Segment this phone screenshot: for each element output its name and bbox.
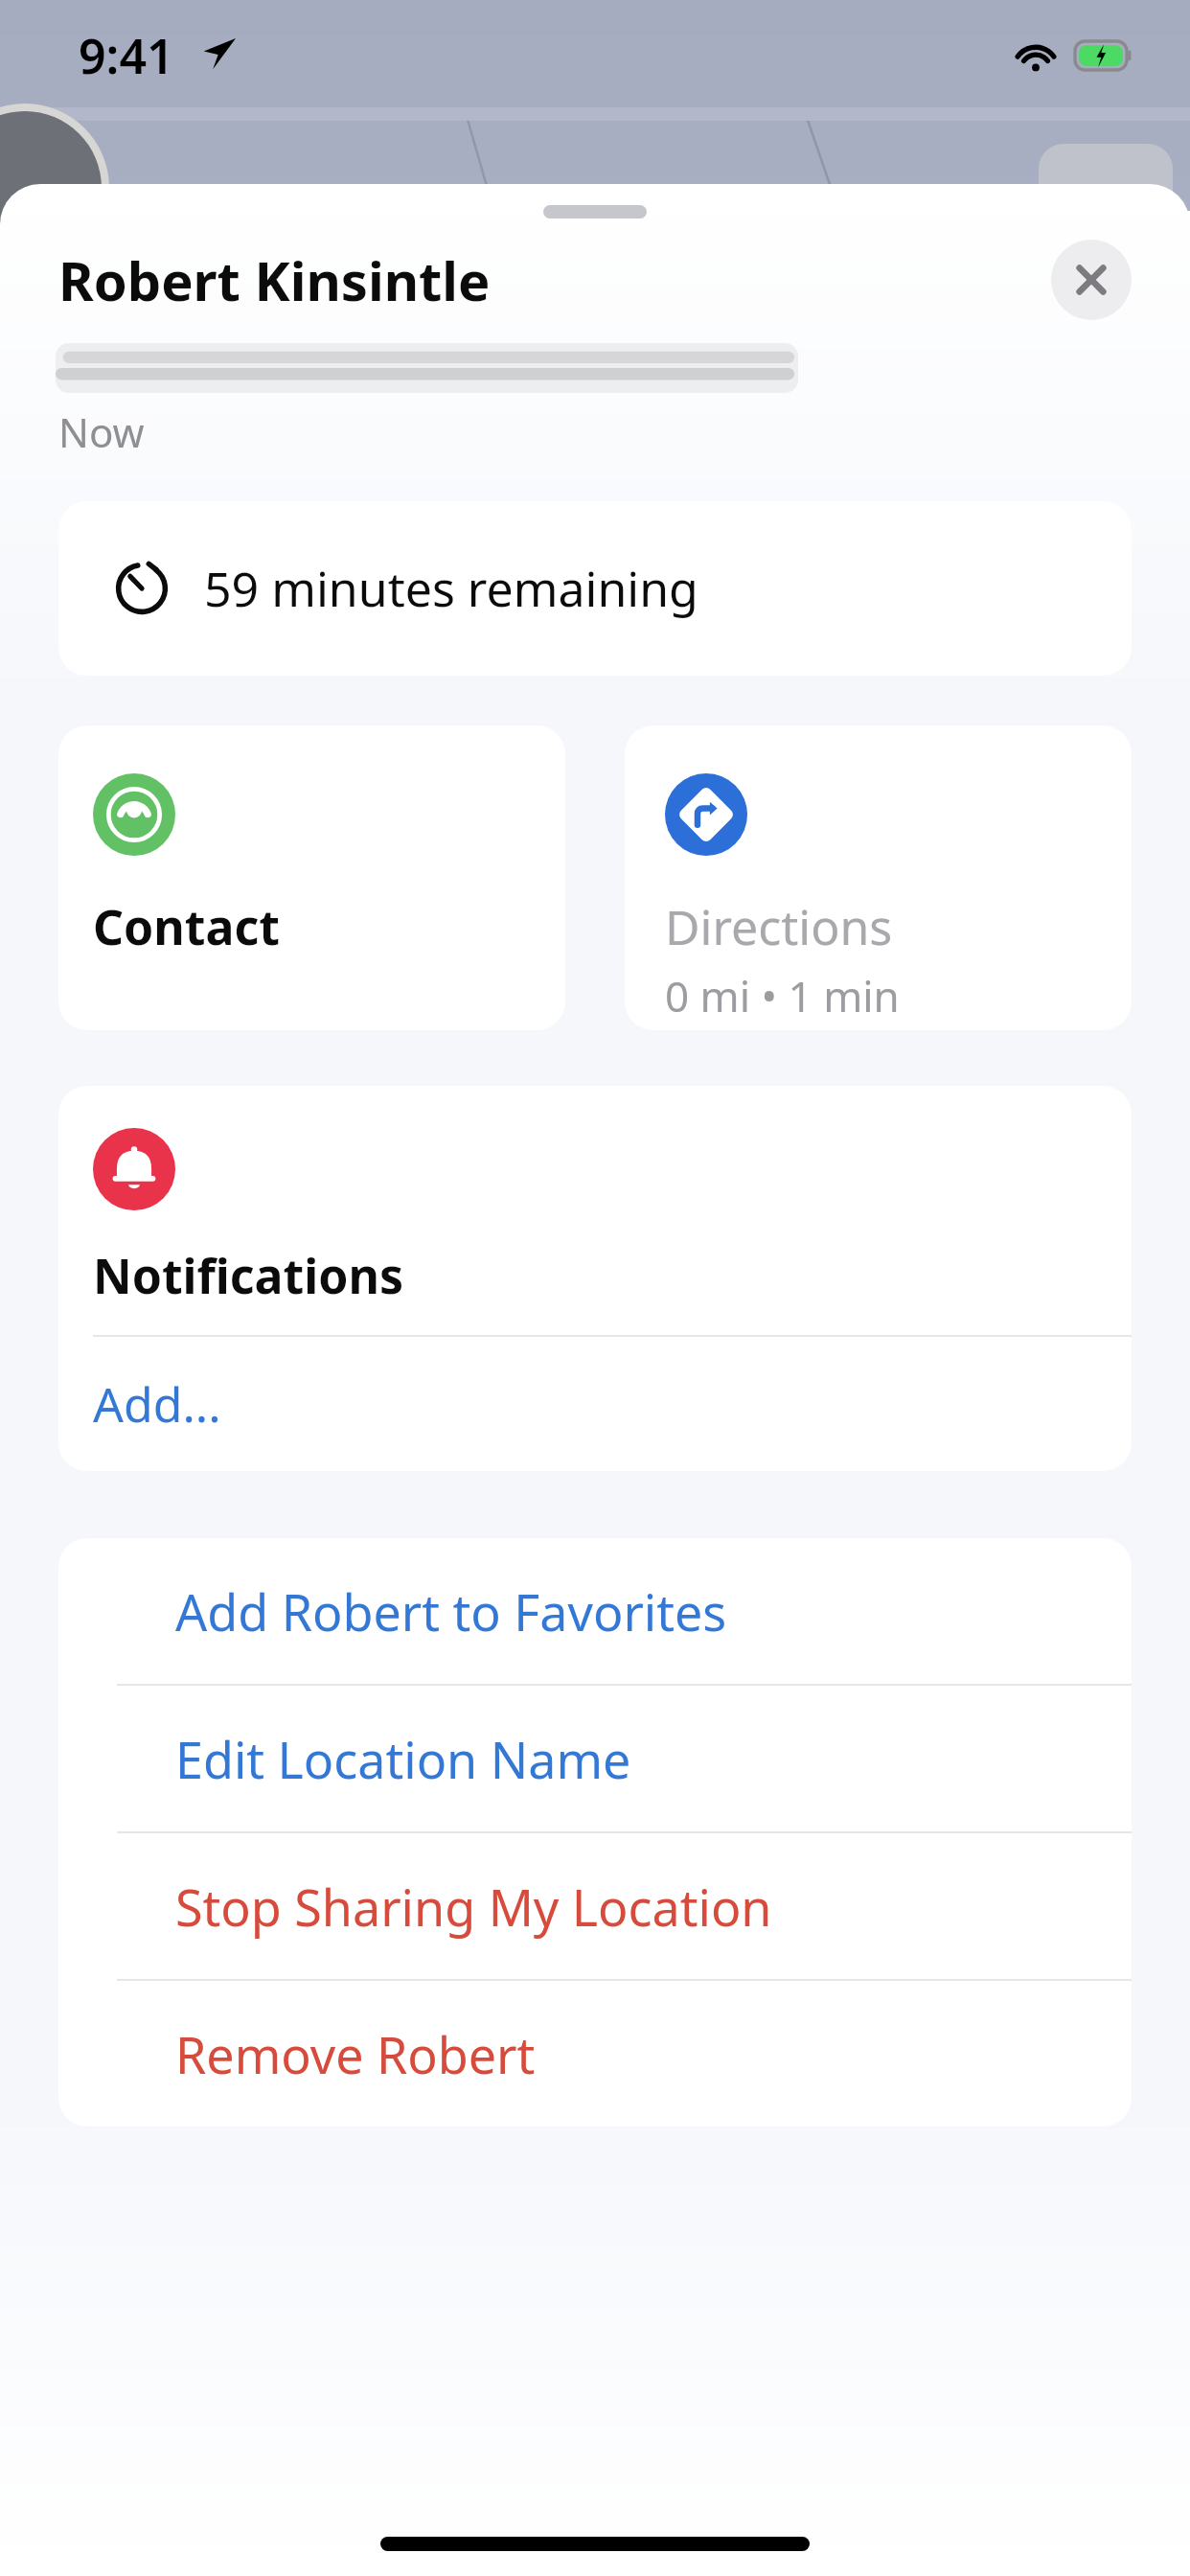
staticText: Add... bbox=[93, 1371, 221, 1437]
button[interactable]: Directions bbox=[625, 725, 1132, 1030]
staticText: Now bbox=[58, 404, 145, 459]
staticText: Directions bbox=[665, 894, 893, 959]
button[interactable]: Notifications bbox=[58, 1086, 1132, 1335]
staticText: 0 mi • 1 min bbox=[665, 967, 900, 1024]
staticText: Edit Location Name bbox=[175, 1725, 631, 1793]
staticText: Add Robert to Favorites bbox=[175, 1577, 727, 1645]
staticText: Remove Robert bbox=[175, 2020, 536, 2088]
staticText: Contact bbox=[93, 894, 280, 959]
staticText: 59 minutes remaining bbox=[204, 556, 698, 621]
button[interactable]: Edit Location Name bbox=[58, 1686, 1132, 1831]
button[interactable]: Stop Sharing My Location bbox=[58, 1833, 1132, 1979]
button[interactable]: 59 minutes remaining bbox=[58, 501, 1132, 676]
staticText: Stop Sharing My Location bbox=[175, 1873, 772, 1941]
button[interactable]: Remove Robert bbox=[58, 1981, 1132, 2127]
button[interactable]: Add Robert to Favorites bbox=[58, 1538, 1132, 1684]
staticText: Robert Kinsintle bbox=[58, 243, 491, 316]
button[interactable]: Contact bbox=[58, 725, 565, 1030]
button[interactable]: Close bbox=[1051, 240, 1132, 320]
staticText: Notifications bbox=[93, 1243, 404, 1308]
staticText: 9:41 bbox=[79, 23, 174, 88]
button[interactable]: Add... bbox=[58, 1337, 1132, 1471]
